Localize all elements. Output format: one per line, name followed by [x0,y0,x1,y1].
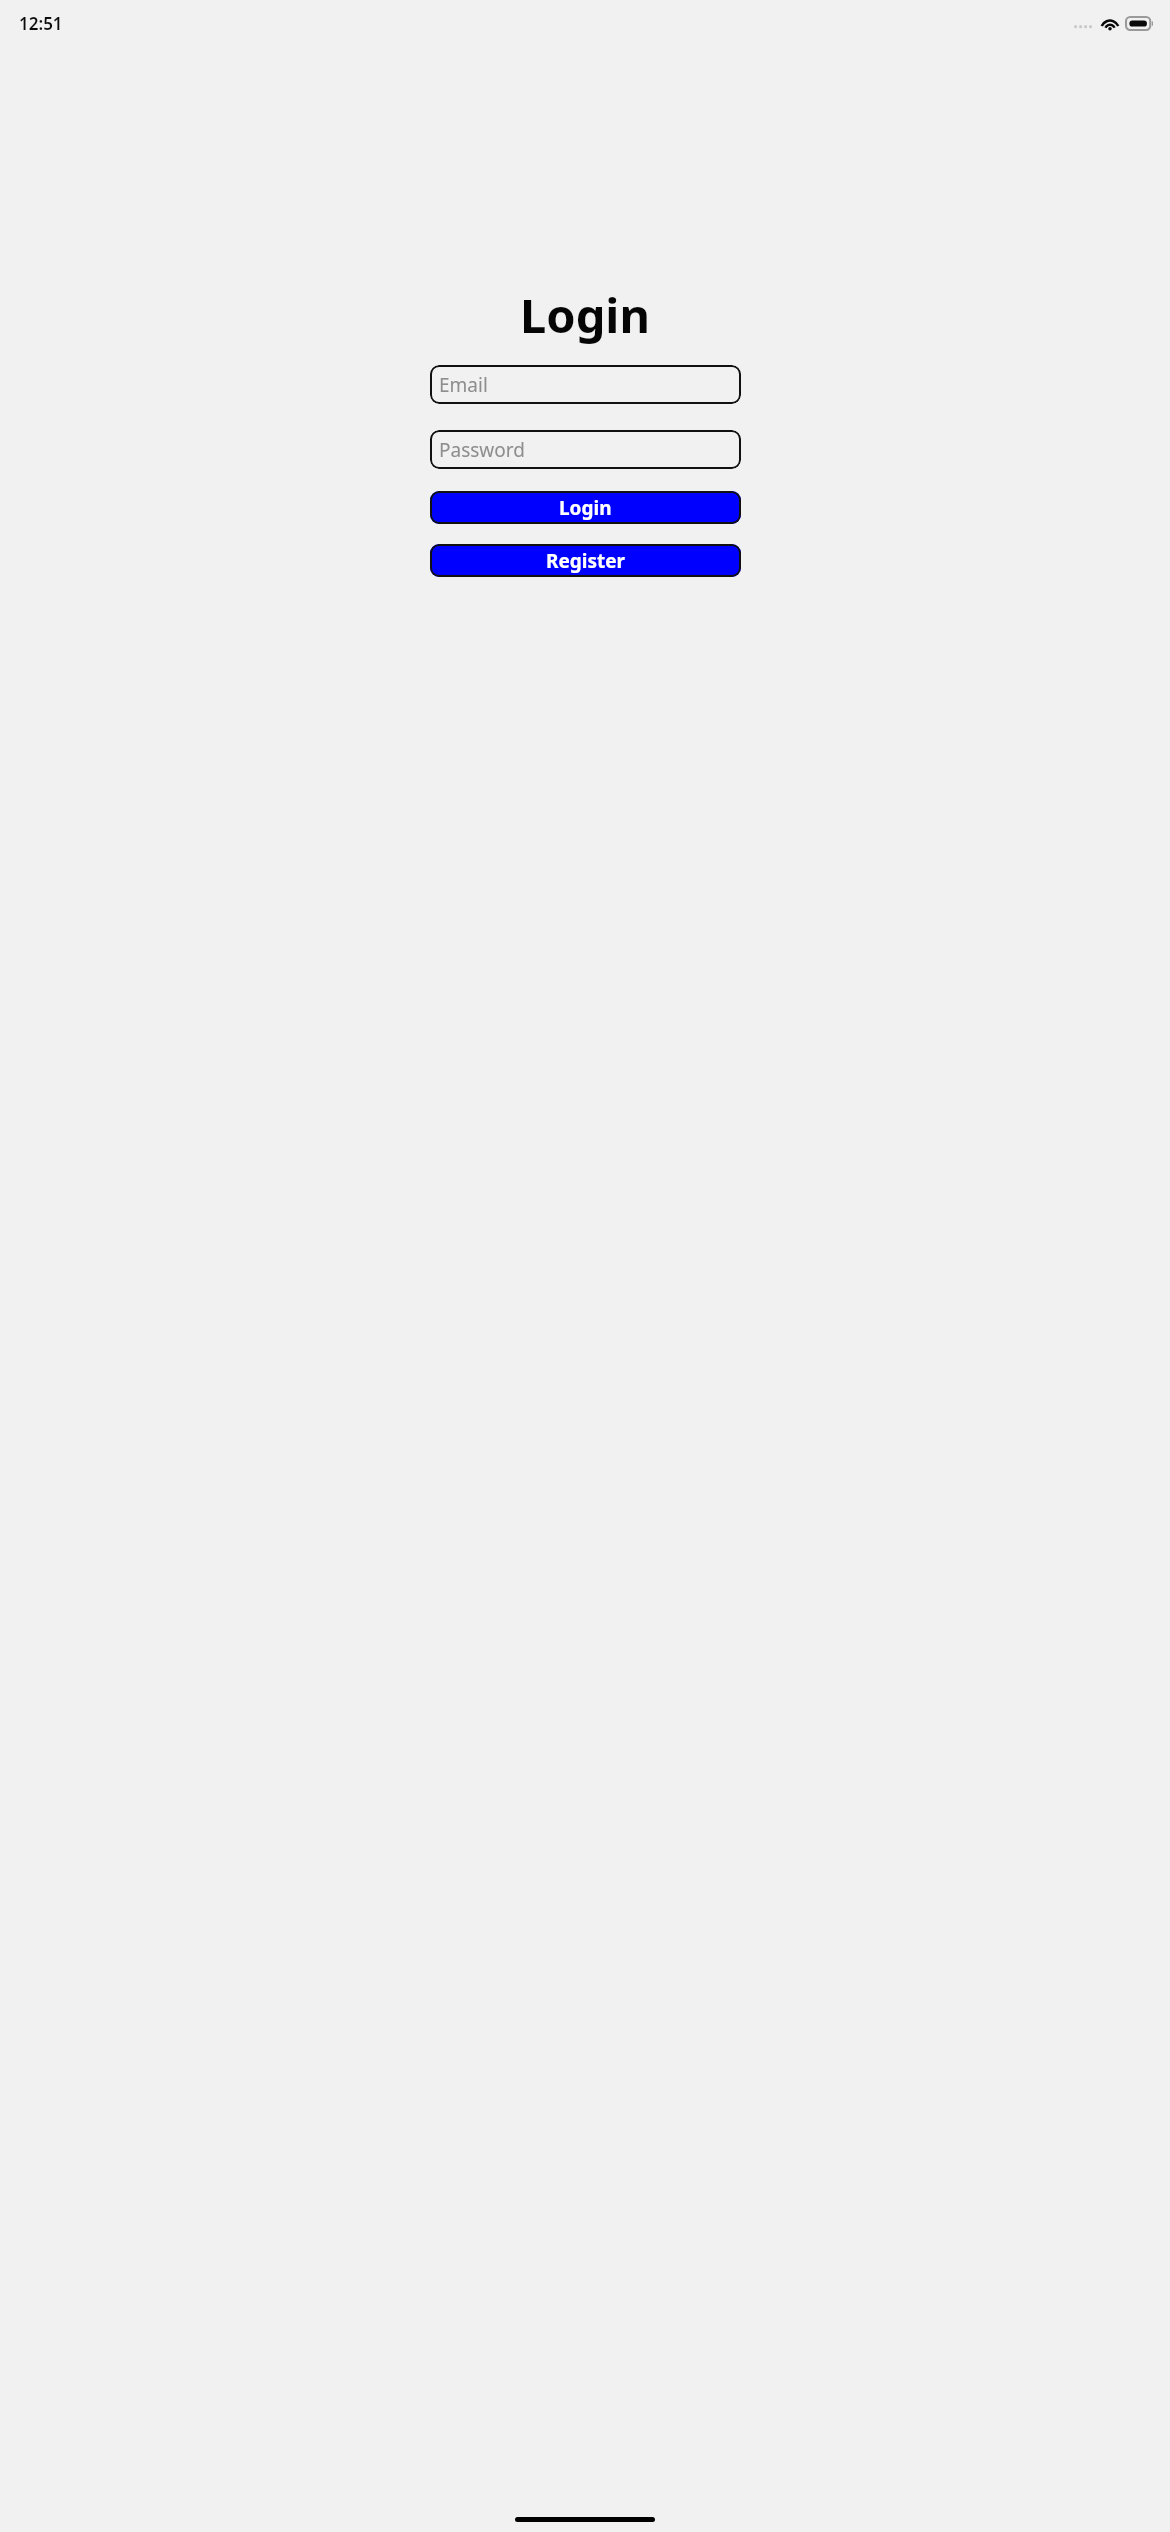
staticText: Login [520,283,650,347]
button[interactable]: Register [430,544,741,577]
staticText: 12:51 [19,12,63,35]
button[interactable]: Email [430,365,741,404]
staticText: Login [559,495,612,521]
staticText: Register [546,548,626,574]
staticText: Email [439,372,488,398]
button[interactable]: Password [430,430,741,469]
staticText: Password [439,437,525,463]
button[interactable]: Login [430,491,741,524]
